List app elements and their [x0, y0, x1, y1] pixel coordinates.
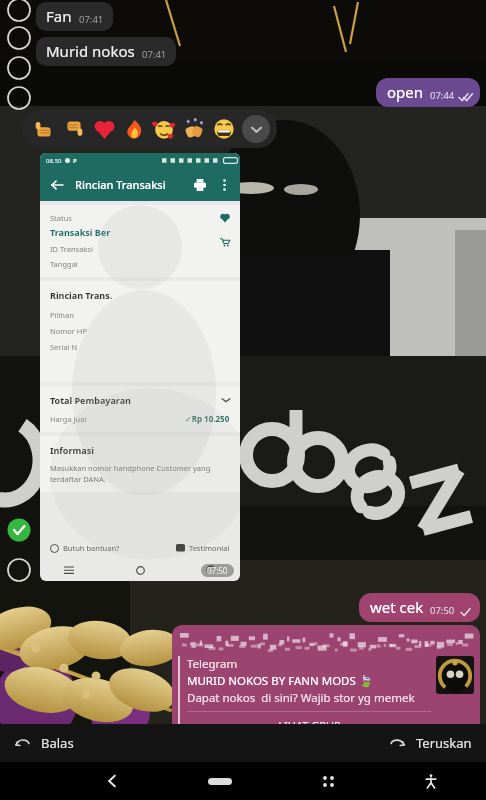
- staticText: 07:41: [79, 13, 104, 26]
- staticText: Rincian Transaksi: [75, 177, 166, 192]
- button[interactable]: Reaction: [59, 114, 89, 144]
- staticText: Murid nokos: [46, 41, 135, 61]
- button[interactable]: Reaction: [29, 114, 59, 144]
- staticText: Nomor HP: [50, 326, 87, 336]
- button[interactable]: Accessibility: [414, 764, 448, 798]
- button[interactable]: Reaction: [149, 114, 179, 144]
- button[interactable]: Recent apps: [311, 764, 345, 798]
- button[interactable]: Balas: [14, 734, 82, 752]
- staticText: Harga Jual: [50, 414, 87, 424]
- staticText: P: [73, 157, 77, 165]
- button[interactable]: Reaction: [179, 114, 209, 144]
- staticText: 08.50: [46, 157, 62, 165]
- button[interactable]: Reaction: [119, 114, 149, 144]
- staticText: Tanggal: [50, 259, 78, 269]
- staticText: Teruskan: [416, 734, 472, 752]
- staticText: open: [387, 82, 424, 102]
- staticText: Dapat nokos di sini? Wajib stor yg memek: [187, 690, 415, 706]
- button[interactable]: Telegram: [172, 625, 480, 759]
- button[interactable]: More reactions: [242, 115, 270, 143]
- button[interactable]: More options: [216, 177, 232, 193]
- staticText: Status: [50, 213, 72, 223]
- button[interactable]: wet cek: [359, 593, 480, 622]
- button[interactable]: Back: [48, 176, 66, 194]
- button[interactable]: Butuh bantuan?: [50, 543, 120, 553]
- staticText: Informasi: [50, 444, 94, 456]
- staticText: Serial N: [50, 342, 78, 352]
- staticText: MURID NOKOS BY FANN MODS 🍃: [187, 673, 374, 689]
- staticText: Telegram: [187, 656, 238, 672]
- staticText: 07:51: [434, 740, 459, 753]
- staticText: wet cek: [370, 597, 424, 617]
- button[interactable]: Murid nokos: [36, 37, 176, 66]
- button[interactable]: Fan: [36, 2, 113, 31]
- staticText: 07:50: [207, 565, 228, 576]
- button[interactable]: Testimonial: [176, 543, 230, 553]
- button[interactable]: LIHAT GRUP: [187, 718, 431, 733]
- button[interactable]: Home: [198, 766, 242, 796]
- button[interactable]: open: [376, 78, 480, 107]
- button[interactable]: Back: [95, 764, 129, 798]
- staticText: Butuh bantuan?: [63, 543, 120, 553]
- staticText: Pilihan: [50, 310, 74, 320]
- button[interactable]: Reaction: [209, 114, 239, 144]
- staticText: Rincian Trans.: [50, 289, 113, 301]
- staticText: 07:50: [430, 604, 455, 617]
- staticText: 07:44: [430, 89, 455, 102]
- staticText: ✓Rp 10.250: [185, 413, 230, 424]
- staticText: 07:41: [142, 48, 167, 61]
- button[interactable]: Print: [191, 176, 209, 194]
- button[interactable]: Teruskan: [381, 734, 472, 752]
- staticText: Masukkan nomor handphone Customer yang t…: [50, 463, 230, 484]
- staticText: Balas: [41, 734, 74, 752]
- staticText: Fan: [46, 6, 72, 26]
- staticText: ID Transaksi: [50, 244, 93, 254]
- staticText: Testimonial: [189, 543, 230, 553]
- button[interactable]: Reaction: [89, 114, 119, 144]
- staticText: Transaksi Ber: [50, 226, 111, 238]
- staticText: Total Pembayaran: [50, 394, 131, 406]
- button[interactable]: Shared screenshot: [40, 153, 240, 581]
- staticText: LIHAT GRUP: [278, 718, 341, 733]
